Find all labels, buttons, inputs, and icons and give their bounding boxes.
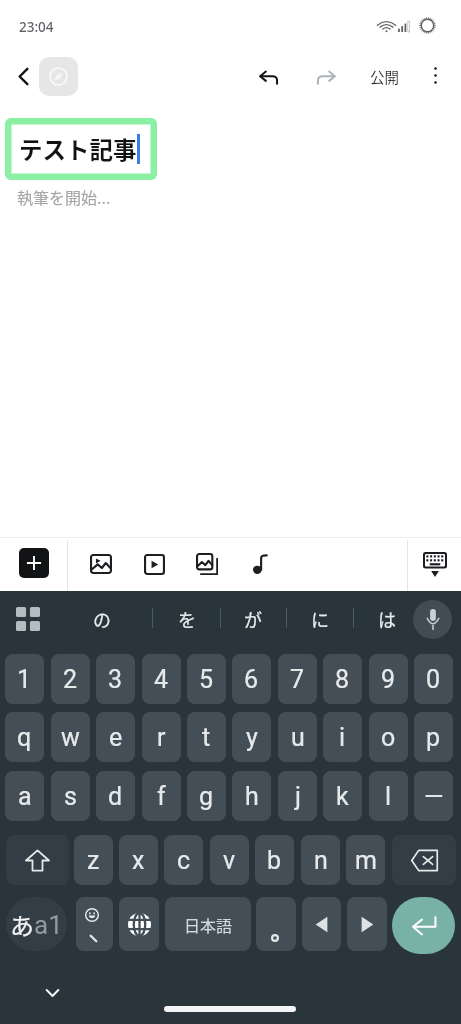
button[interactable]: Back [5, 58, 41, 94]
button[interactable]: Change language [119, 897, 159, 951]
button[interactable]: Clipboard [5, 598, 50, 639]
staticText: 2 [63, 665, 78, 694]
button[interactable]: あ [6, 897, 67, 951]
button[interactable]: Video [133, 544, 175, 584]
button[interactable]: More options [417, 57, 453, 93]
staticText: 0 [426, 665, 441, 694]
staticText: の [93, 606, 111, 632]
staticText: が [244, 606, 262, 632]
button[interactable]: 4 [142, 654, 181, 704]
button[interactable]: を [152, 591, 221, 646]
button[interactable]: Gallery [185, 544, 228, 584]
button[interactable]: l [369, 771, 408, 821]
button[interactable]: v [210, 835, 249, 885]
staticText: 4 [154, 665, 169, 694]
staticText: 6 [244, 665, 259, 694]
button[interactable]: Undo [249, 57, 288, 96]
button[interactable]: f [142, 771, 181, 821]
button[interactable]: p [414, 712, 453, 762]
staticText: 8 [335, 665, 350, 694]
button[interactable]: Hide keyboard [34, 976, 71, 1010]
staticText: 7 [290, 665, 305, 694]
staticText: o [381, 723, 396, 752]
button[interactable]: i [323, 712, 362, 762]
button[interactable]: Shift [6, 835, 69, 885]
button[interactable]: d [96, 771, 135, 821]
button[interactable]: u [278, 712, 317, 762]
staticText: n [314, 846, 328, 875]
button[interactable]: Redo [307, 57, 346, 96]
button[interactable]: Hide keyboard [412, 544, 458, 584]
staticText: s [64, 782, 77, 811]
staticText: q [17, 723, 32, 752]
staticText: 23:04 [19, 18, 54, 36]
button[interactable]: z [74, 835, 113, 885]
button[interactable]: — [414, 771, 453, 821]
button[interactable]: w [51, 712, 90, 762]
button[interactable]: Enter [392, 897, 455, 954]
button[interactable]: Audio [240, 544, 280, 584]
button[interactable]: y [232, 712, 271, 762]
button[interactable]: s [51, 771, 90, 821]
button[interactable]: 3 [96, 654, 135, 704]
staticText: m [355, 846, 377, 875]
button[interactable]: q [5, 712, 44, 762]
button[interactable]: Move cursor left [302, 897, 341, 951]
button[interactable]: に [286, 591, 353, 646]
button[interactable]: Image [80, 544, 122, 584]
button[interactable]: 9 [369, 654, 408, 704]
button[interactable]: 日本語 [165, 897, 251, 951]
staticText: t [202, 723, 211, 752]
button[interactable]: Backspace [392, 835, 456, 885]
button[interactable]: 公開 [362, 57, 406, 95]
button[interactable]: は [353, 591, 420, 646]
button[interactable]: 7 [278, 654, 317, 704]
button[interactable]: e [96, 712, 135, 762]
staticText: k [336, 782, 349, 811]
staticText: g [199, 782, 214, 811]
button[interactable]: 6 [232, 654, 271, 704]
button[interactable]: k [323, 771, 362, 821]
staticText: l [385, 782, 392, 811]
button[interactable]: t [187, 712, 226, 762]
button[interactable]: 8 [323, 654, 362, 704]
button[interactable] [256, 897, 296, 951]
button[interactable]: o [369, 712, 408, 762]
button[interactable]: 2 [51, 654, 90, 704]
button[interactable]: Add block [19, 548, 49, 578]
staticText: e [109, 723, 123, 752]
staticText: i [339, 723, 346, 752]
staticText: テスト記事 [19, 132, 137, 166]
button[interactable]: Voice input [413, 600, 452, 639]
button[interactable]: r [142, 712, 181, 762]
button[interactable]: n [301, 835, 340, 885]
button[interactable]: が [220, 591, 285, 646]
staticText: j [295, 782, 301, 811]
staticText: c [177, 846, 191, 875]
staticText: y [246, 723, 258, 752]
button[interactable]: h [232, 771, 271, 821]
button[interactable]: j [278, 771, 317, 821]
button[interactable]: Move cursor right [347, 897, 387, 951]
staticText: 公開 [370, 66, 399, 87]
button[interactable]: a [5, 771, 44, 821]
staticText: を [178, 606, 196, 632]
button[interactable]: b [255, 835, 294, 885]
button[interactable]: Emoji [76, 897, 113, 951]
staticText: 1 [17, 665, 32, 694]
button[interactable]: c [164, 835, 203, 885]
button[interactable]: の [52, 591, 152, 646]
staticText: w [61, 723, 80, 752]
button[interactable]: x [119, 835, 158, 885]
staticText: z [87, 846, 100, 875]
button[interactable]: 5 [187, 654, 226, 704]
staticText: 3 [108, 665, 123, 694]
button[interactable]: 0 [414, 654, 453, 704]
staticText: v [223, 846, 236, 875]
staticText: a1 [34, 910, 63, 940]
button[interactable]: g [187, 771, 226, 821]
button[interactable]: 1 [5, 654, 44, 704]
staticText: u [291, 723, 305, 752]
button[interactable]: Site icon [39, 57, 78, 96]
button[interactable]: m [346, 835, 385, 885]
